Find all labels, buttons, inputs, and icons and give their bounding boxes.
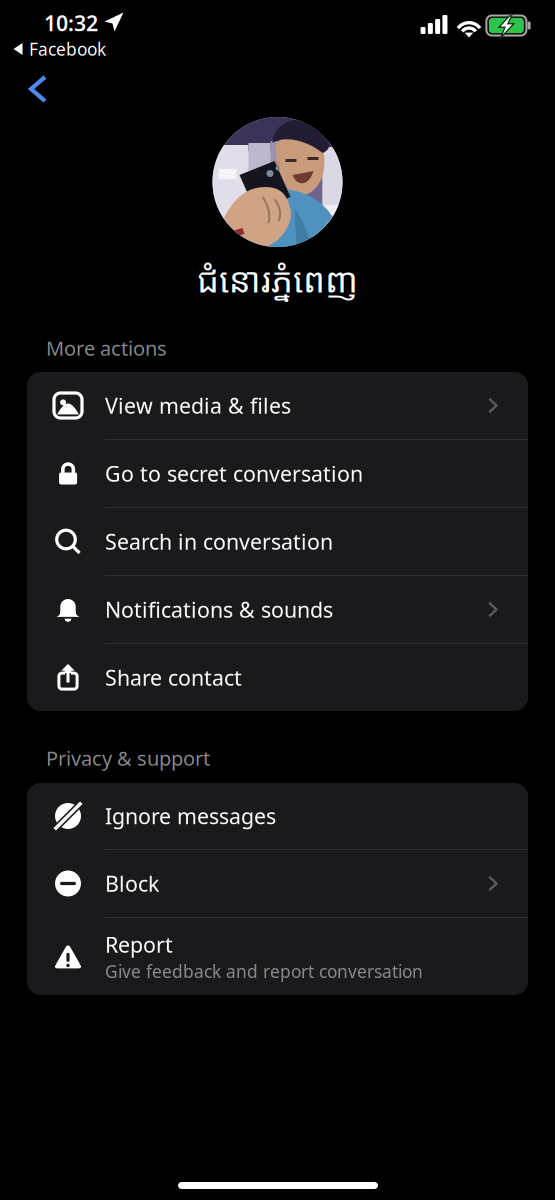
- button[interactable]: Ignore messages: [27, 783, 528, 849]
- staticText: Notifications & sounds: [105, 595, 333, 624]
- staticText: ជំនោរភ្នំពេញ: [197, 255, 358, 303]
- staticText: Share contact: [105, 663, 242, 692]
- button[interactable]: Block: [27, 850, 528, 917]
- button[interactable]: Share contact: [27, 644, 528, 711]
- staticText: Privacy & support: [46, 745, 210, 771]
- staticText: View media & files: [105, 391, 291, 420]
- staticText: Go to secret conversation: [105, 459, 363, 488]
- button[interactable]: Back: [12, 64, 64, 114]
- button[interactable]: Search in conversation: [27, 508, 528, 575]
- staticText: Give feedback and report conversation: [105, 960, 423, 983]
- button[interactable]: View media & files: [27, 372, 528, 439]
- staticText: Search in conversation: [105, 527, 333, 556]
- button[interactable]: Report: [27, 918, 528, 995]
- staticText: Facebook: [29, 37, 106, 60]
- staticText: 10:32: [44, 9, 98, 37]
- staticText: Ignore messages: [105, 802, 276, 830]
- staticText: Report: [105, 930, 173, 959]
- button[interactable]: Go to secret conversation: [27, 440, 528, 507]
- staticText: Block: [105, 869, 159, 898]
- staticText: More actions: [46, 335, 167, 361]
- button[interactable]: Notifications & sounds: [27, 576, 528, 643]
